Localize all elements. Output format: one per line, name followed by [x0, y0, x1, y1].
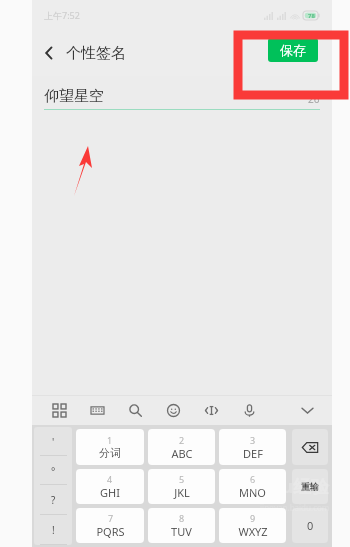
staticText: jingyan.baidu.com	[260, 502, 330, 513]
button[interactable]: 6	[219, 469, 286, 504]
staticText: °	[51, 464, 56, 478]
staticText: 7	[108, 512, 114, 524]
button[interactable]: 仰望星空	[44, 80, 320, 106]
button[interactable]: 7	[76, 508, 144, 543]
staticText: TUV	[171, 524, 192, 539]
staticText: 4	[107, 473, 113, 485]
staticText: WXYZ	[238, 524, 268, 539]
button[interactable]: 保存	[268, 38, 318, 62]
staticText: 9	[250, 512, 256, 524]
button[interactable]: '	[34, 427, 72, 456]
staticText: 26	[308, 92, 320, 106]
staticText: ?	[51, 493, 56, 507]
button[interactable]: Emoji	[156, 396, 190, 425]
button[interactable]: 5	[148, 469, 215, 504]
staticText: 2	[179, 434, 185, 446]
button[interactable]: 1	[76, 429, 144, 465]
staticText: Baidu经验	[242, 474, 330, 499]
staticText: 重输	[301, 481, 319, 492]
button[interactable]: °	[34, 456, 72, 485]
staticText: 0	[307, 518, 314, 533]
staticText: MNO	[239, 485, 266, 500]
staticText: 5	[179, 473, 185, 485]
staticText: 8	[179, 512, 185, 524]
button[interactable]: Cursor	[194, 396, 228, 425]
staticText: '	[52, 435, 55, 449]
staticText: 1	[107, 434, 113, 446]
button[interactable]: 0	[292, 508, 328, 543]
staticText: 分词	[99, 446, 121, 460]
button[interactable]: Search	[118, 396, 152, 425]
button[interactable]: 9	[219, 508, 286, 543]
staticText: 仰望星空	[44, 87, 308, 106]
staticText: ABC	[171, 446, 193, 461]
staticText: 上午7:52	[44, 9, 80, 21]
button[interactable]: Voice	[232, 396, 266, 425]
button[interactable]: !	[34, 515, 72, 545]
staticText: 3	[250, 434, 256, 446]
staticText: 个性签名	[66, 44, 126, 63]
button[interactable]: 3	[219, 429, 286, 465]
staticText: DEF	[243, 446, 263, 461]
staticText: PQRS	[96, 524, 125, 539]
staticText: !	[52, 523, 55, 537]
button[interactable]: 8	[148, 508, 215, 543]
button[interactable]: Back	[32, 36, 66, 70]
staticText: GHI	[100, 485, 120, 500]
button[interactable]: Hide keyboard	[290, 396, 324, 425]
button[interactable]: 2	[148, 429, 215, 465]
button[interactable]: 4	[76, 469, 144, 504]
staticText: 6	[250, 473, 256, 485]
staticText: 保存	[280, 42, 306, 58]
button[interactable]: Apps	[42, 396, 76, 425]
button[interactable]: Backspace	[292, 429, 328, 465]
staticText: JKL	[174, 485, 190, 500]
button[interactable]: ?	[34, 485, 72, 515]
staticText: 78	[308, 12, 315, 20]
button[interactable]: 重输	[292, 469, 328, 504]
button[interactable]: Keyboard	[80, 396, 114, 425]
